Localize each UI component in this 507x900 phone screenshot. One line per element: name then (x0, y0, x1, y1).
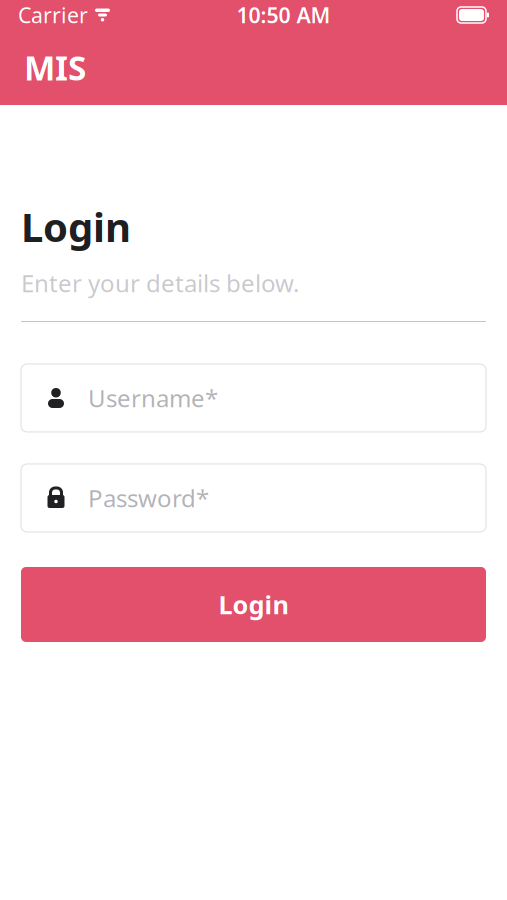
staticText: Password* (88, 482, 209, 514)
button[interactable]: Username* (21, 364, 486, 432)
staticText: Carrier (18, 1, 88, 29)
staticText: Login (218, 588, 288, 621)
staticText: Login (21, 200, 131, 253)
staticText: Username* (88, 382, 218, 414)
staticText: Enter your details below. (21, 267, 299, 299)
staticText: 10:50 AM (236, 1, 330, 29)
staticText: MIS (24, 45, 86, 90)
button[interactable]: Password* (21, 464, 486, 532)
button[interactable]: Login (21, 567, 486, 642)
